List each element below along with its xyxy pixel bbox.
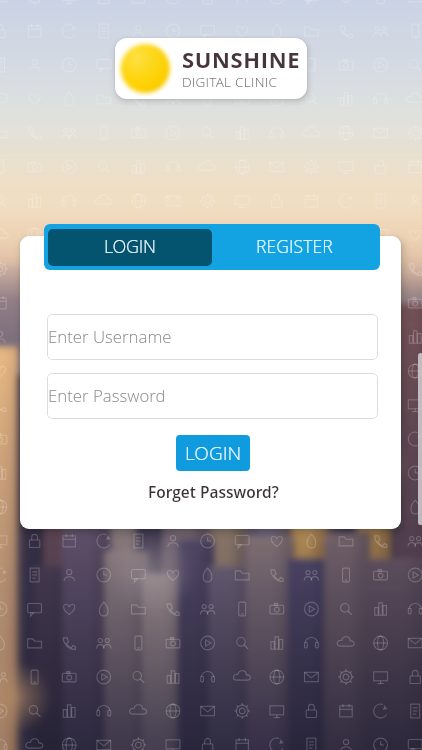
button[interactable]: SUNSHINE <box>115 38 307 99</box>
staticText: REGISTER <box>256 234 333 258</box>
staticText: LOGIN <box>185 440 242 466</box>
button[interactable]: Forget Password? <box>142 480 285 502</box>
button[interactable]: LOGIN <box>48 229 212 266</box>
staticText: Enter Username <box>48 325 172 348</box>
button[interactable]: REGISTER <box>209 224 379 270</box>
staticText: SUNSHINE <box>182 44 301 74</box>
staticText: Enter Password <box>48 384 166 407</box>
button[interactable]: Enter Username <box>47 314 378 360</box>
staticText: DIGITAL CLINIC <box>182 72 278 91</box>
staticText: LOGIN <box>104 234 156 259</box>
button[interactable]: LOGIN <box>176 435 250 471</box>
button[interactable]: Enter Password <box>47 373 378 419</box>
staticText: Forget Password? <box>148 481 279 502</box>
